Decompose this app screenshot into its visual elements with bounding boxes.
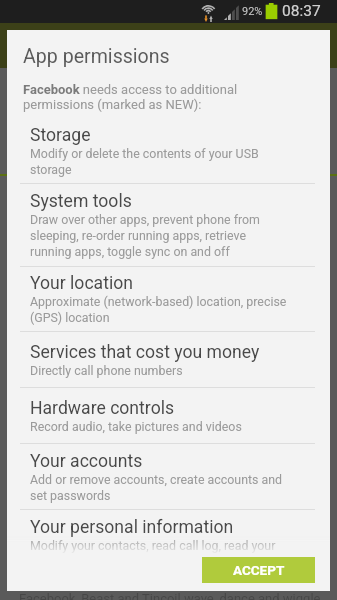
staticText: App permissions bbox=[23, 45, 170, 68]
staticText: Draw over other apps, prevent phone from… bbox=[30, 211, 289, 259]
staticText: Directly call phone numbers bbox=[30, 362, 183, 378]
staticText: Facebook, Beast and Tincoil wave, dance … bbox=[19, 591, 324, 600]
button[interactable]: Services that cost you money bbox=[7, 332, 330, 387]
button[interactable]: Your location bbox=[7, 267, 330, 331]
button[interactable]: Your personal information bbox=[7, 510, 330, 575]
staticText: Record audio, take pictures and videos bbox=[30, 418, 242, 434]
staticText: ACCEPT bbox=[233, 562, 285, 578]
staticText: Modify or delete the contents of your US… bbox=[30, 145, 289, 177]
staticText: Hardware controls bbox=[30, 398, 175, 418]
staticText: Storage bbox=[30, 125, 91, 145]
button[interactable]: System tools bbox=[7, 184, 330, 266]
staticText: Your personal information bbox=[30, 517, 234, 537]
staticText: Services that cost you money bbox=[30, 342, 260, 362]
staticText: 08:37 bbox=[282, 2, 321, 20]
button[interactable]: Storage bbox=[7, 119, 330, 183]
staticText: System tools bbox=[30, 191, 132, 211]
button[interactable]: Your accounts bbox=[7, 444, 330, 509]
staticText: Facebook needs access to additional perm… bbox=[23, 82, 258, 112]
staticText: 92% bbox=[242, 5, 263, 18]
staticText: Add or remove accounts, create accounts … bbox=[30, 471, 289, 503]
staticText: Your accounts bbox=[30, 451, 143, 471]
staticText: Approximate (network-based) location, pr… bbox=[30, 293, 289, 325]
staticText: Your location bbox=[30, 273, 133, 293]
button[interactable]: ACCEPT bbox=[202, 557, 315, 583]
button[interactable]: Hardware controls bbox=[7, 388, 330, 443]
staticText: Modify your contacts, read call log, rea… bbox=[30, 537, 289, 569]
